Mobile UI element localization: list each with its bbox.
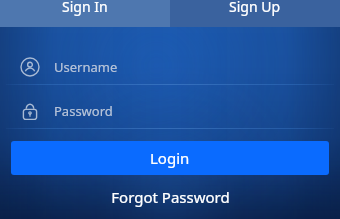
other: User xyxy=(20,57,40,77)
other: Password xyxy=(20,101,40,121)
staticText: Forgot Password xyxy=(111,187,230,207)
staticText: Login xyxy=(150,148,190,168)
staticText: Password xyxy=(54,102,113,120)
staticText: Sign In xyxy=(62,0,108,16)
staticText: Username xyxy=(54,58,118,76)
button[interactable]: Login xyxy=(11,141,329,175)
button[interactable]: User xyxy=(0,55,340,79)
button[interactable]: Password xyxy=(0,99,340,123)
button[interactable]: Forgot Password xyxy=(0,175,340,219)
button[interactable]: Sign In xyxy=(0,0,170,27)
button[interactable]: Sign Up xyxy=(170,0,340,27)
staticText: Sign Up xyxy=(229,0,281,16)
